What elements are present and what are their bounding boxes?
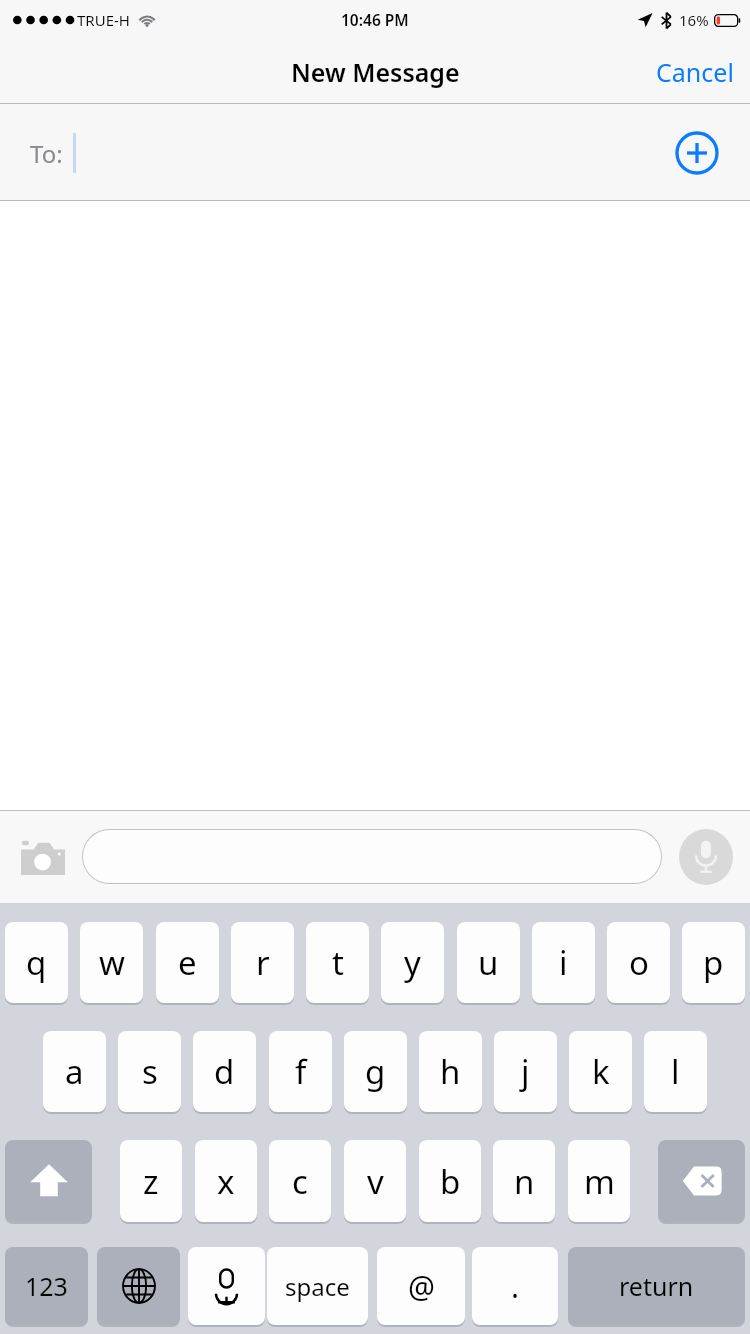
staticText: n [514,1159,535,1204]
staticText: 16% [679,10,709,30]
staticText: a [65,1049,84,1094]
button[interactable]: d [193,1031,256,1112]
staticText: 123 [25,1269,68,1303]
button[interactable]: e [156,922,219,1003]
button[interactable]: b [419,1140,481,1222]
staticText: l [671,1049,680,1094]
staticText: z [143,1159,159,1204]
button[interactable]: i [532,922,595,1003]
staticText: To: [30,137,63,170]
button[interactable]: p [682,922,745,1003]
staticText: t [332,940,344,985]
button[interactable]: m [568,1140,630,1222]
other: Next keyboard [97,1247,180,1325]
staticText: c [292,1159,308,1204]
staticText: v [367,1159,384,1204]
other: Shift [5,1140,92,1222]
staticText: w [99,940,125,985]
staticText: r [256,940,270,985]
staticText: return [619,1269,694,1303]
button[interactable]: v [344,1140,406,1222]
button[interactable]: return [568,1247,745,1325]
staticText: i [559,940,568,985]
button[interactable]: h [419,1031,482,1112]
button[interactable]: l [644,1031,707,1112]
button[interactable]: w [80,922,143,1003]
button[interactable]: c [269,1140,331,1222]
button[interactable]: g [344,1031,407,1112]
button[interactable]: z [120,1140,182,1222]
button[interactable]: f [269,1031,332,1112]
button[interactable] [5,1140,92,1222]
staticText: j [521,1049,530,1094]
staticText: h [440,1049,461,1094]
button[interactable]: q [5,922,68,1003]
staticText: 10:46 PM [341,9,409,30]
staticText: TRUE-H [77,10,130,30]
button[interactable]: Add contact [675,131,719,175]
staticText: space [285,1270,350,1303]
button[interactable]: To: [0,104,750,201]
button[interactable]: @ [377,1247,465,1325]
staticText: e [178,940,197,985]
staticText: x [217,1159,235,1204]
staticText: . [511,1266,520,1307]
staticText: New Message [291,55,460,89]
staticText: k [592,1049,610,1094]
staticText: b [440,1159,461,1204]
staticText: f [295,1049,307,1094]
button[interactable]: Camera [16,830,70,884]
button[interactable]: Dictation [678,829,734,885]
button[interactable]: j [494,1031,557,1112]
button[interactable]: o [607,922,670,1003]
button[interactable] [188,1247,265,1325]
staticText: u [478,940,499,985]
button[interactable]: r [231,922,294,1003]
button[interactable]: n [493,1140,555,1222]
button[interactable] [658,1140,745,1222]
staticText: o [629,940,649,985]
button[interactable]: space [267,1247,368,1325]
button[interactable]: a [43,1031,106,1112]
button[interactable]: 123 [5,1247,88,1325]
staticText: Cancel [656,55,734,89]
other: Delete [658,1140,745,1222]
button[interactable]: k [569,1031,632,1112]
button[interactable]: y [381,922,444,1003]
staticText: y [404,940,421,985]
staticText: m [584,1159,615,1204]
staticText: d [214,1049,235,1094]
staticText: @ [408,1266,435,1307]
button[interactable]: Cancel [640,44,750,100]
button[interactable]: s [118,1031,181,1112]
button[interactable]: x [195,1140,257,1222]
button[interactable] [82,829,662,884]
other: Dictation [188,1247,265,1325]
staticText: p [703,940,724,985]
button[interactable]: u [457,922,520,1003]
staticText: q [26,940,47,985]
button[interactable] [97,1247,180,1325]
button[interactable]: t [306,922,369,1003]
staticText: s [142,1049,158,1094]
button[interactable]: . [472,1247,558,1325]
staticText: g [365,1049,386,1094]
